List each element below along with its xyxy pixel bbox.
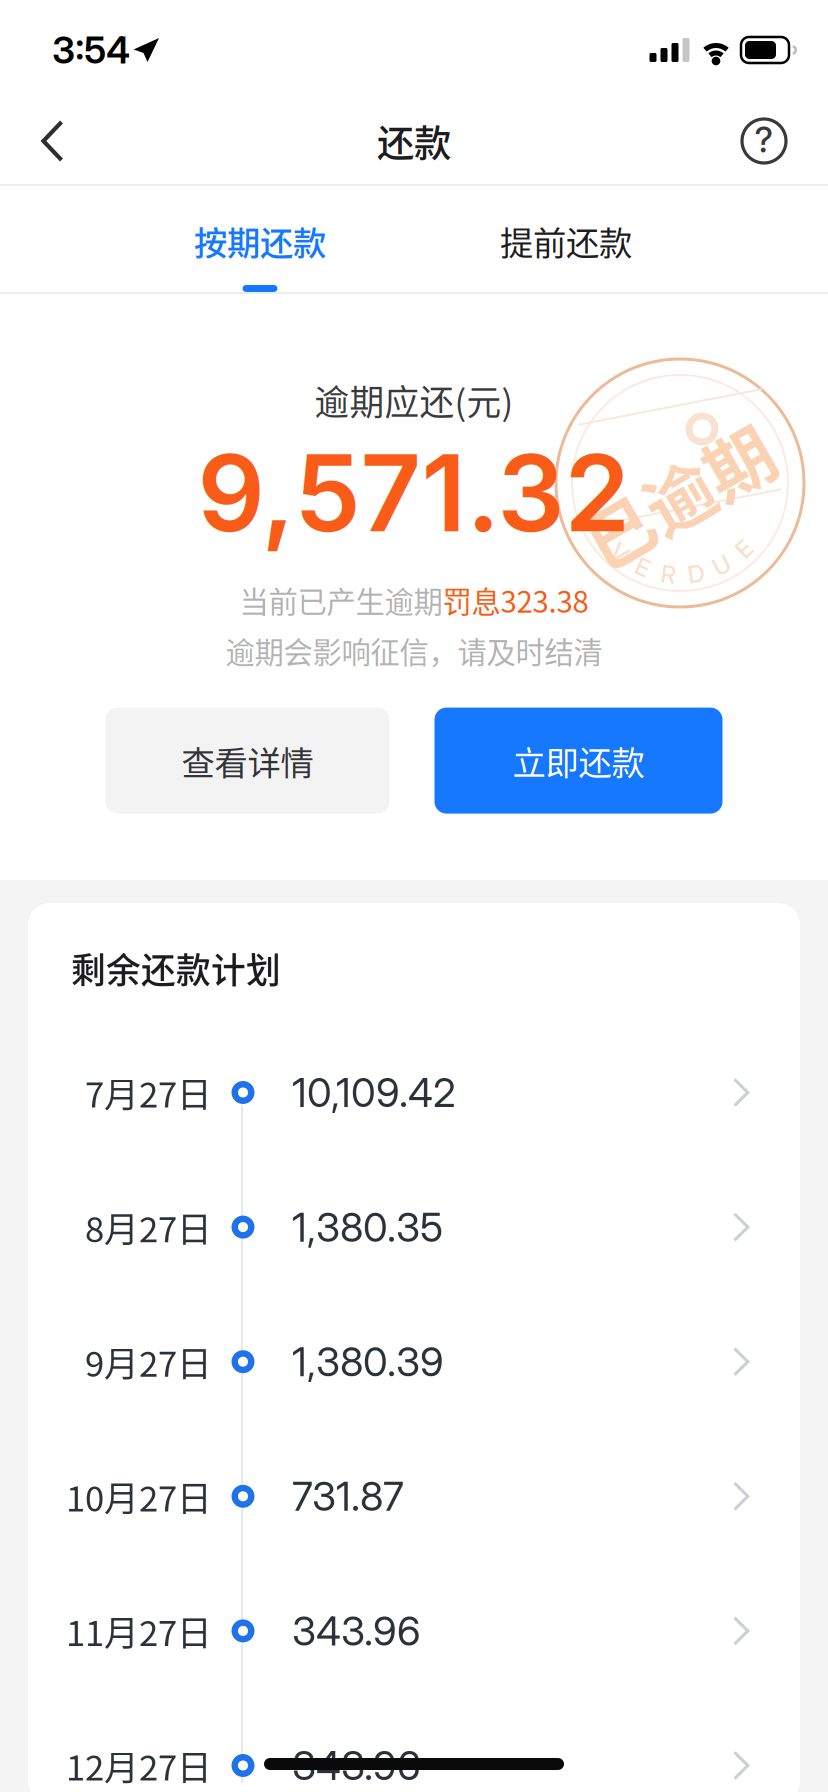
staticText: 按期还款 [194,217,326,265]
staticText: 剩余还款计划 [71,943,281,993]
staticText: 343.96 [292,1741,421,1790]
staticText: 7月27日 [85,1067,212,1118]
staticText: 11月27日 [66,1606,212,1656]
staticText: O [598,525,616,554]
button[interactable]: 12月27日 [28,1698,800,1792]
button[interactable]: Help [718,95,810,187]
staticText: 提前还款 [500,217,632,265]
button[interactable]: 按期还款 [160,186,360,292]
staticText: 当前已产生逾期 [239,579,442,621]
staticText: 立即还款 [512,736,644,785]
button[interactable]: 立即还款 [434,708,722,814]
button[interactable]: 8月27日 [28,1160,800,1294]
button[interactable]: 9月27日 [28,1294,800,1429]
staticText: 9,571.32 [197,429,630,557]
staticText: 10,109.42 [292,1068,456,1117]
staticText: D [697,557,714,586]
button[interactable]: 7月27日 [28,1025,800,1160]
staticText: 1,380.39 [292,1337,444,1386]
staticText: U [721,546,739,575]
staticText: R [670,560,686,589]
staticText: 10月27日 [66,1471,212,1521]
staticText: 查看详情 [181,736,313,785]
staticText: V [619,544,636,573]
staticText: 已逾期 [574,445,781,545]
staticText: ? [754,119,773,161]
staticText: 12月27日 [66,1740,212,1791]
staticText: 343.96 [292,1607,421,1655]
button[interactable]: 11月27日 [28,1564,800,1698]
staticText: 731.87 [292,1472,404,1520]
staticText: E [743,528,757,557]
staticText: 逾期会影响征信，请及时结清 [225,629,602,672]
staticText: 9月27日 [85,1337,212,1387]
staticText: 8月27日 [85,1202,212,1252]
staticText: 1,380.35 [292,1203,443,1251]
staticText: E [645,556,659,585]
button[interactable]: 查看详情 [105,708,389,814]
button[interactable]: 10月27日 [28,1429,800,1564]
button[interactable]: 提前还款 [466,186,666,292]
staticText: 还款 [377,114,451,168]
staticText: 逾期应还(元) [314,375,513,425]
staticText: 3:54 [52,27,130,73]
button[interactable]: Back [6,95,98,187]
staticText: 罚息323.38 [442,579,588,621]
